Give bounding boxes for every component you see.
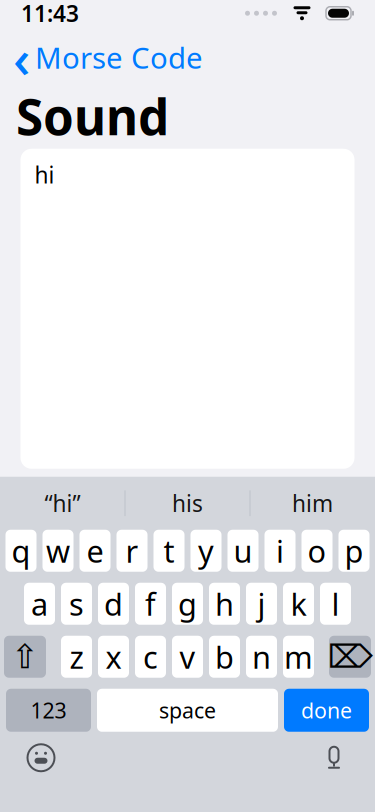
button[interactable]: l xyxy=(320,583,351,625)
button[interactable]: u xyxy=(227,530,258,572)
staticText: “hi” xyxy=(44,488,80,518)
staticText: 123 xyxy=(30,696,66,724)
button[interactable]: n xyxy=(246,636,277,678)
button[interactable]: 123 xyxy=(6,689,91,732)
button[interactable]: d xyxy=(98,583,129,625)
staticText: k xyxy=(290,583,306,624)
staticText: h xyxy=(215,583,234,624)
button[interactable]: Emoji keyboard xyxy=(19,736,63,780)
staticText: j xyxy=(257,583,265,624)
button[interactable]: w xyxy=(42,530,73,572)
staticText: e xyxy=(86,530,103,571)
staticText: q xyxy=(11,530,30,571)
staticText: l xyxy=(331,583,339,624)
staticText: him xyxy=(292,488,333,518)
staticText: Morse Code xyxy=(35,38,203,77)
staticText: b xyxy=(215,636,234,677)
button[interactable]: s xyxy=(61,583,92,625)
staticText: s xyxy=(69,583,84,624)
button[interactable]: “hi” xyxy=(0,477,124,530)
staticText: m xyxy=(284,636,313,677)
staticText: t xyxy=(163,530,174,571)
staticText: p xyxy=(344,530,363,571)
button[interactable]: h xyxy=(209,583,240,625)
staticText: his xyxy=(172,488,203,518)
button[interactable]: j xyxy=(246,583,277,625)
staticText: ⌦ xyxy=(327,639,372,675)
button[interactable]: c xyxy=(135,636,166,678)
button[interactable]: a xyxy=(24,583,55,625)
button[interactable]: e xyxy=(79,530,110,572)
staticText: z xyxy=(69,636,83,677)
button[interactable]: x xyxy=(98,636,129,678)
button[interactable]: his xyxy=(125,477,249,530)
button[interactable]: Dictation xyxy=(312,736,356,780)
staticText: x xyxy=(105,636,121,677)
button[interactable]: f xyxy=(135,583,166,625)
staticText: a xyxy=(31,583,48,624)
staticText: done xyxy=(301,696,352,724)
staticText: hi xyxy=(34,160,54,190)
staticText: space xyxy=(159,696,216,724)
staticText: d xyxy=(104,583,123,624)
staticText: f xyxy=(145,583,156,624)
staticText: 11:43 xyxy=(21,0,79,28)
staticText: w xyxy=(46,530,70,571)
staticText: v xyxy=(179,636,195,677)
staticText: u xyxy=(233,530,252,571)
button[interactable]: m xyxy=(283,636,314,678)
button[interactable]: q xyxy=(5,530,36,572)
button[interactable]: p xyxy=(338,530,369,572)
button[interactable]: t xyxy=(153,530,184,572)
button[interactable]: Delete xyxy=(329,636,371,678)
button[interactable]: r xyxy=(116,530,147,572)
staticText: c xyxy=(143,636,158,677)
button[interactable]: him xyxy=(250,477,374,530)
button[interactable]: o xyxy=(301,530,332,572)
staticText: ‹ xyxy=(13,22,30,93)
staticText: g xyxy=(178,583,197,624)
staticText: Sound xyxy=(16,83,169,149)
button[interactable]: v xyxy=(172,636,203,678)
staticText: r xyxy=(125,530,138,571)
staticText: i xyxy=(276,530,284,571)
staticText: y xyxy=(198,530,214,571)
button[interactable]: k xyxy=(283,583,314,625)
button[interactable]: b xyxy=(209,636,240,678)
staticText: o xyxy=(307,530,326,571)
button[interactable]: ‹ xyxy=(7,31,211,84)
button[interactable]: g xyxy=(172,583,203,625)
button[interactable]: z xyxy=(61,636,92,678)
button[interactable]: space xyxy=(97,689,278,732)
button[interactable]: done xyxy=(284,689,369,732)
button[interactable]: hi xyxy=(20,149,354,469)
button[interactable]: y xyxy=(190,530,221,572)
staticText: n xyxy=(252,636,271,677)
button[interactable]: Shift xyxy=(4,636,46,678)
button[interactable]: i xyxy=(264,530,295,572)
staticText: ⇧ xyxy=(11,638,39,676)
